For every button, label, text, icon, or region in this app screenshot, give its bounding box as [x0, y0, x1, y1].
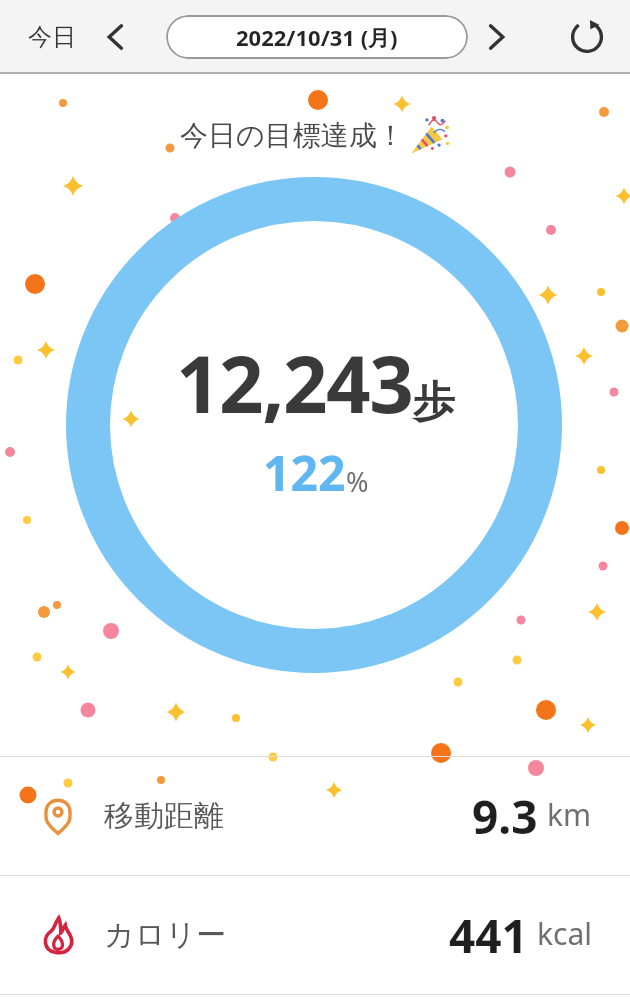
staticText: km	[547, 794, 592, 835]
staticText: 122	[263, 440, 346, 505]
staticText: 歩	[413, 376, 455, 429]
staticText: カロリー	[104, 916, 227, 954]
staticText: 今日の目標達成！	[180, 118, 405, 153]
staticText: 2022/10/31 (月)	[236, 22, 398, 52]
button[interactable]: Distance	[0, 757, 630, 875]
button[interactable]: 2022/10/31 (月)	[166, 15, 468, 59]
staticText: 441	[449, 904, 528, 967]
staticText: 9.3	[472, 785, 538, 848]
button[interactable]: 今日	[0, 14, 88, 60]
staticText: 移動距離	[104, 797, 224, 835]
staticText: %	[346, 463, 369, 500]
staticText: 12,243	[176, 330, 413, 436]
button[interactable]: Next day	[472, 13, 520, 61]
button[interactable]: Calories	[0, 876, 630, 994]
staticText: kcal	[537, 913, 592, 954]
other: Distance	[38, 796, 78, 836]
button[interactable]: Previous day	[92, 13, 140, 61]
button[interactable]: Refresh	[561, 11, 613, 63]
other: Calories	[38, 915, 78, 955]
